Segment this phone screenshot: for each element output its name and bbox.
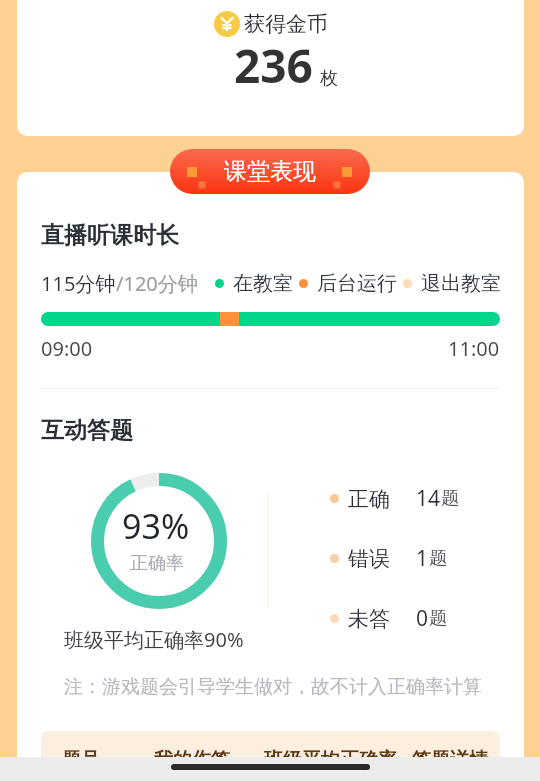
- staticText: 未答: [348, 606, 390, 632]
- staticText: 正确: [348, 486, 390, 512]
- button[interactable]: [41, 731, 500, 758]
- staticText: 获得金币: [244, 11, 328, 37]
- staticText: 0: [416, 604, 429, 633]
- button[interactable]: 课堂表现: [170, 149, 370, 194]
- staticText: 11:00: [448, 335, 500, 362]
- staticText: /120分钟: [116, 270, 198, 297]
- staticText: 236: [234, 34, 313, 97]
- staticText: 在教室: [233, 271, 293, 296]
- staticText: 题: [441, 487, 459, 510]
- staticText: 115分钟: [41, 270, 116, 297]
- button[interactable]: 班级平均正确率: [264, 748, 397, 758]
- staticText: 注：游戏题会引导学生做对，故不计入正确率计算: [64, 675, 482, 699]
- button[interactable]: 题号: [62, 748, 100, 758]
- staticText: 09:00: [41, 335, 93, 362]
- staticText: 班级平均正确率90%: [64, 626, 244, 653]
- staticText: 14: [416, 484, 441, 513]
- staticText: 错误: [348, 546, 390, 572]
- staticText: 枚: [320, 67, 338, 90]
- staticText: 退出教室: [421, 271, 501, 296]
- staticText: 题: [429, 607, 447, 630]
- staticText: 题: [429, 547, 447, 570]
- staticText: 课堂表现: [224, 157, 316, 186]
- staticText: 93%: [122, 503, 190, 549]
- button[interactable]: 答题详情: [412, 748, 488, 758]
- staticText: 1: [416, 544, 429, 573]
- staticText: 直播听课时长: [41, 221, 179, 250]
- button[interactable]: 获得金币: [17, 0, 524, 136]
- staticText: 正确率: [130, 552, 184, 575]
- staticText: 后台运行: [317, 271, 397, 296]
- staticText: 互动答题: [41, 416, 133, 445]
- button[interactable]: 我的作答: [154, 748, 230, 758]
